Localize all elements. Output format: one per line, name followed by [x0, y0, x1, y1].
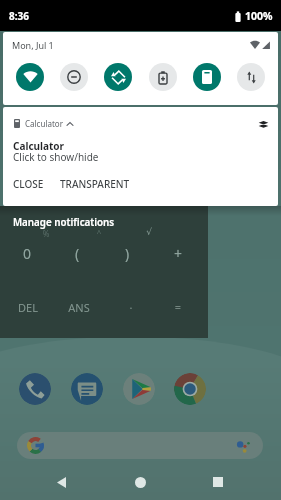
button[interactable]: Flashlight — [193, 63, 221, 91]
staticText: ( — [55, 244, 99, 263]
staticText: ANS — [57, 300, 101, 315]
staticText: + — [156, 244, 200, 263]
staticText: ) — [105, 244, 149, 263]
button[interactable]: Mobile data — [237, 63, 265, 91]
staticText: = — [156, 299, 200, 314]
other: Wi-Fi — [250, 41, 260, 49]
button[interactable]: CLOSE — [11, 174, 46, 194]
staticText: ^ — [77, 227, 121, 238]
button[interactable]: Layers — [258, 118, 269, 129]
staticText: Calculator — [25, 118, 63, 129]
button[interactable]: Search — [17, 432, 263, 459]
staticText: CLOSE — [13, 177, 44, 191]
staticText: Calculator — [13, 139, 65, 153]
staticText: √ — [127, 227, 171, 237]
button[interactable]: Home — [126, 468, 154, 496]
staticText: Manage notifications — [13, 216, 115, 229]
staticText: 0 — [5, 244, 49, 263]
button[interactable]: Play Store — [123, 373, 155, 405]
button[interactable]: Messages — [71, 373, 103, 405]
button[interactable]: TRANSPARENT — [58, 174, 132, 194]
staticText: . — [109, 297, 153, 312]
staticText: 8:36 — [9, 9, 29, 23]
button[interactable]: Back — [47, 468, 75, 496]
button[interactable]: Do not disturb — [60, 63, 88, 91]
staticText: % — [24, 228, 68, 239]
staticText: Mon, Jul 1 — [12, 39, 54, 51]
other: Mobile signal — [262, 41, 271, 49]
button[interactable]: Calculator — [3, 107, 278, 206]
button[interactable]: Auto-rotate — [104, 63, 132, 91]
button[interactable]: Recent apps — [204, 468, 232, 496]
staticText: DEL — [6, 300, 50, 315]
button[interactable]: Wi-Fi — [16, 63, 44, 91]
button[interactable]: Battery Saver — [149, 63, 177, 91]
button[interactable]: Phone — [19, 373, 51, 405]
staticText: Click to show/hide — [13, 150, 99, 164]
staticText: 100% — [245, 9, 273, 23]
staticText: TRANSPARENT — [60, 177, 130, 191]
button[interactable]: Chrome — [174, 373, 206, 405]
